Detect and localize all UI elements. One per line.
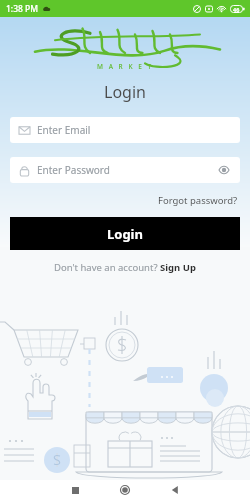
button[interactable]: Enter Password bbox=[10, 157, 240, 183]
staticText: Don't have an account? bbox=[54, 261, 160, 274]
button[interactable]: Login bbox=[10, 217, 240, 250]
staticText: Sign Up bbox=[160, 261, 196, 274]
staticText: Enter Email bbox=[37, 123, 91, 137]
button[interactable]: Recents bbox=[50, 480, 100, 500]
button[interactable]: Home bbox=[100, 480, 150, 500]
staticText: M A R K E T bbox=[97, 62, 154, 71]
button[interactable]: Forgot password? bbox=[156, 192, 240, 209]
staticText: 46 bbox=[233, 6, 240, 13]
staticText: Enter Password bbox=[37, 163, 110, 177]
staticText: Login bbox=[107, 225, 143, 243]
button[interactable]: Back bbox=[150, 480, 200, 500]
staticText: 1:38 PM bbox=[6, 3, 39, 15]
button[interactable]: Sign Up bbox=[160, 261, 196, 274]
staticText: Forgot password? bbox=[158, 194, 238, 207]
button[interactable]: Enter Email bbox=[10, 117, 240, 143]
staticText: Login bbox=[0, 81, 250, 103]
button[interactable]: Show password bbox=[217, 163, 231, 177]
